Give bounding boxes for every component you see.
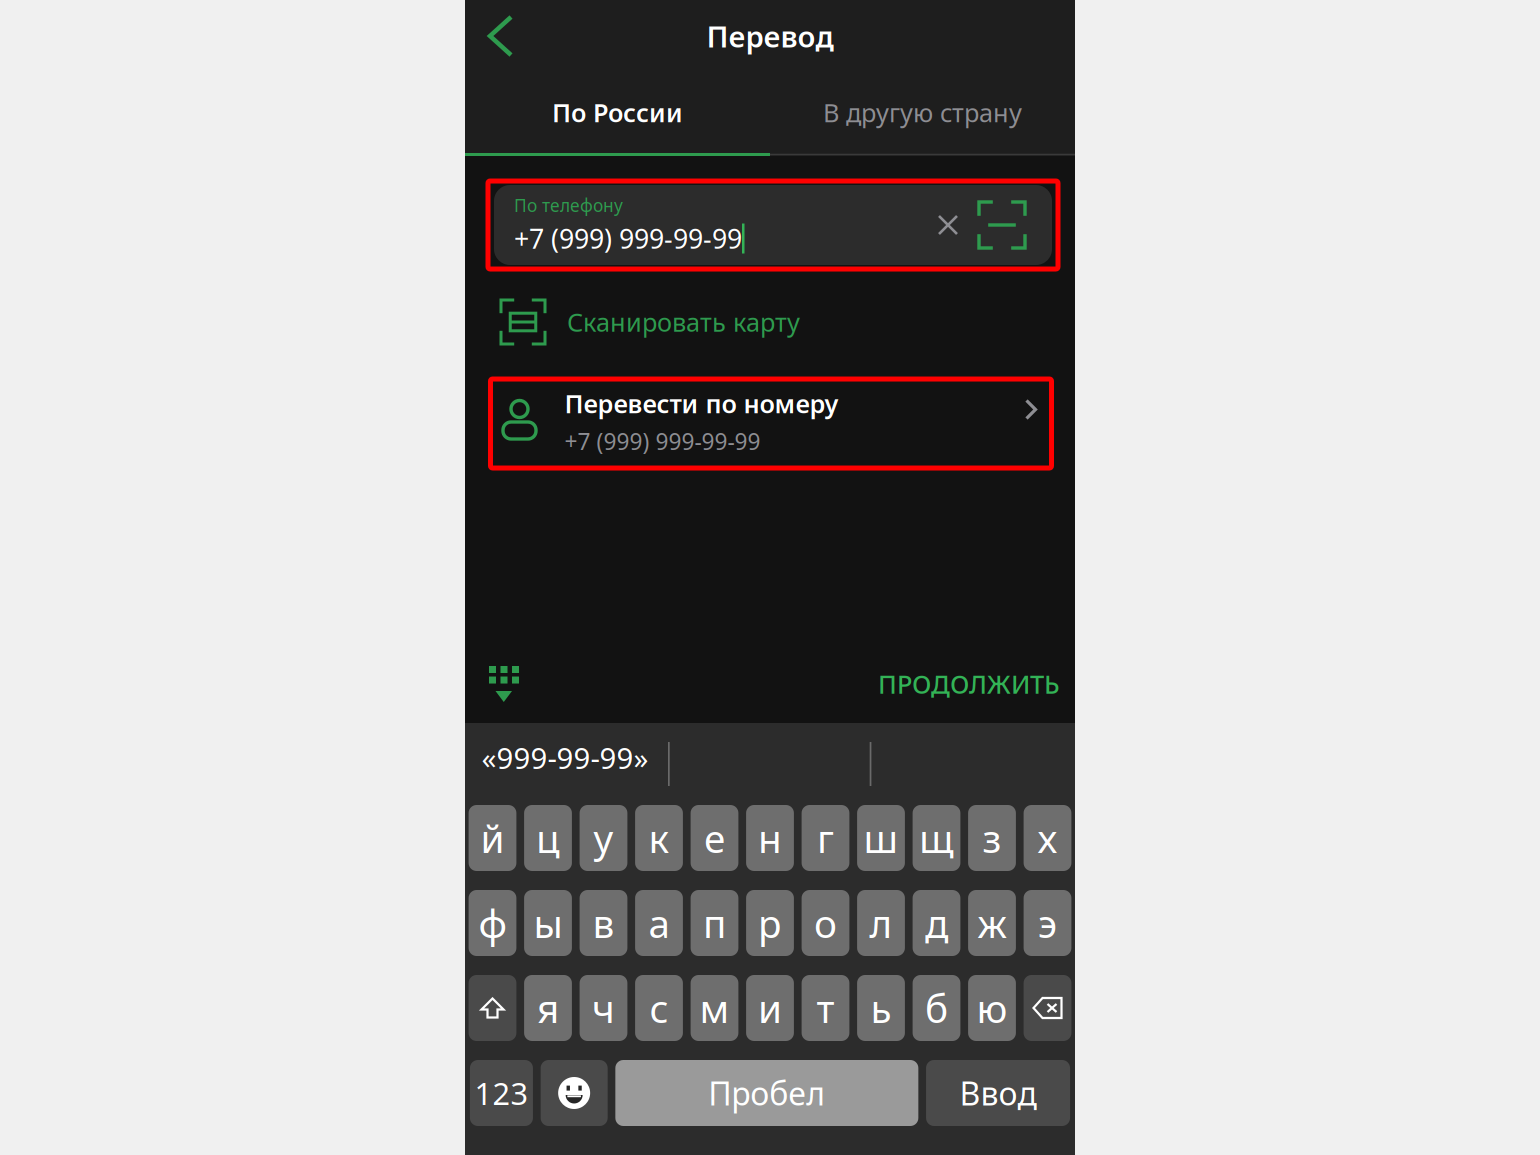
button[interactable]: х bbox=[1024, 805, 1071, 871]
staticText: л bbox=[869, 897, 892, 949]
staticText: э bbox=[1038, 897, 1057, 949]
staticText: ш bbox=[863, 812, 898, 864]
staticText: а bbox=[648, 897, 669, 949]
staticText: р bbox=[758, 897, 782, 949]
staticText: ь bbox=[870, 982, 891, 1034]
button[interactable]: о bbox=[802, 890, 849, 956]
button[interactable]: б bbox=[913, 975, 960, 1041]
button[interactable]: ю bbox=[968, 975, 1016, 1041]
staticText: б bbox=[925, 982, 948, 1034]
button[interactable]: к bbox=[635, 805, 683, 871]
button[interactable]: ж bbox=[968, 890, 1016, 956]
staticText: Ввод bbox=[959, 1072, 1036, 1114]
button[interactable]: н bbox=[746, 805, 794, 871]
button[interactable]: Back bbox=[465, 0, 525, 72]
button[interactable]: у bbox=[580, 805, 627, 871]
staticText: к bbox=[648, 812, 669, 864]
button[interactable]: Clear bbox=[933, 210, 963, 240]
button[interactable]: с bbox=[635, 975, 683, 1041]
staticText: ж bbox=[977, 897, 1006, 949]
button[interactable]: р bbox=[746, 890, 794, 956]
button[interactable]: Shift bbox=[469, 975, 516, 1041]
button[interactable]: ь bbox=[857, 975, 905, 1041]
button[interactable]: «999-99-99» bbox=[467, 734, 663, 780]
button[interactable]: г bbox=[802, 805, 849, 871]
staticText: й bbox=[480, 812, 504, 864]
staticText: з bbox=[982, 812, 1001, 864]
staticText: +7 (999) 999-99-99 bbox=[564, 426, 760, 456]
button[interactable]: э bbox=[1024, 890, 1071, 956]
button[interactable]: Перевести по номеру bbox=[490, 379, 1051, 468]
button[interactable]: Сканировать карту bbox=[465, 285, 1075, 359]
staticText: По России bbox=[552, 96, 683, 129]
button[interactable]: а bbox=[635, 890, 683, 956]
staticText: ф bbox=[478, 897, 506, 949]
staticText: ц bbox=[536, 812, 560, 864]
button[interactable]: т bbox=[802, 975, 849, 1041]
staticText: ч bbox=[592, 982, 615, 1034]
staticText: о bbox=[814, 897, 837, 949]
button[interactable]: По телефону bbox=[494, 185, 1052, 265]
button[interactable]: я bbox=[524, 975, 572, 1041]
button[interactable]: ч bbox=[580, 975, 627, 1041]
button[interactable]: з bbox=[968, 805, 1016, 871]
staticText: г bbox=[817, 812, 834, 864]
button[interactable]: й bbox=[469, 805, 516, 871]
button[interactable]: ПРОДОЛЖИТЬ bbox=[870, 655, 1068, 713]
staticText: п bbox=[703, 897, 726, 949]
button[interactable]: Пробел bbox=[615, 1060, 918, 1126]
button[interactable]: Backspace bbox=[1024, 975, 1071, 1041]
staticText: Перевести по номеру bbox=[564, 387, 838, 420]
button[interactable]: По России bbox=[465, 72, 770, 153]
staticText: Сканировать карту bbox=[567, 305, 800, 339]
staticText: х bbox=[1037, 812, 1057, 864]
button[interactable]: и bbox=[746, 975, 794, 1041]
button[interactable]: 123 bbox=[470, 1060, 533, 1126]
staticText: Перевод bbox=[706, 16, 833, 55]
staticText: ПРОДОЛЖИТЬ bbox=[878, 667, 1060, 701]
staticText: «999-99-99» bbox=[481, 738, 648, 777]
staticText: с bbox=[649, 982, 668, 1034]
staticText: е bbox=[704, 812, 725, 864]
button[interactable]: Emoji bbox=[541, 1060, 608, 1126]
staticText: +7 (999) 999-99-99 bbox=[514, 221, 742, 256]
button[interactable]: л bbox=[857, 890, 905, 956]
button[interactable]: д bbox=[913, 890, 960, 956]
staticText: т bbox=[816, 982, 834, 1034]
button[interactable]: м bbox=[691, 975, 738, 1041]
staticText: ы bbox=[533, 897, 562, 949]
button[interactable]: ц bbox=[524, 805, 572, 871]
button[interactable]: п bbox=[691, 890, 738, 956]
button[interactable]: ф bbox=[469, 890, 516, 956]
staticText: Пробел bbox=[708, 1072, 825, 1114]
staticText: В другую страну bbox=[823, 96, 1022, 129]
staticText: я bbox=[537, 982, 559, 1034]
button[interactable]: Hide keyboard bbox=[477, 654, 531, 714]
button[interactable]: ш bbox=[857, 805, 905, 871]
staticText: ю bbox=[976, 982, 1007, 1034]
staticText: и bbox=[758, 982, 782, 1034]
staticText: щ bbox=[919, 812, 954, 864]
button[interactable]: Scan QR code bbox=[979, 202, 1025, 248]
button[interactable]: е bbox=[691, 805, 738, 871]
staticText: 123 bbox=[474, 1073, 528, 1113]
staticText: д bbox=[925, 897, 948, 949]
button[interactable]: в bbox=[580, 890, 627, 956]
staticText: По телефону bbox=[514, 194, 623, 217]
button[interactable]: щ bbox=[913, 805, 960, 871]
button[interactable]: ы bbox=[524, 890, 572, 956]
staticText: в bbox=[592, 897, 614, 949]
staticText: у bbox=[593, 812, 613, 864]
staticText: н bbox=[758, 812, 782, 864]
staticText: м bbox=[699, 982, 729, 1034]
button[interactable]: В другую страну bbox=[770, 72, 1075, 153]
button[interactable]: Ввод bbox=[926, 1060, 1070, 1126]
